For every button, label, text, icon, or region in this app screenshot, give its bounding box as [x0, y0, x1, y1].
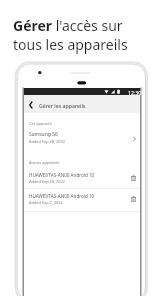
- staticText: HUAWEI/TAS-AN00 Android 10: [29, 193, 95, 199]
- other: Device details: [128, 128, 140, 146]
- button[interactable]: Samsung S6: [24, 128, 140, 146]
- staticText: 12:30: [128, 89, 142, 96]
- staticText: Added Sep 20, 2022: [29, 179, 66, 184]
- staticText: Added Sep 28, 2022: [29, 139, 66, 144]
- staticText: Cet appareil: [29, 121, 52, 126]
- staticText: HUAWEI/TAS-AN00 Android 10: [29, 172, 95, 178]
- button[interactable]: Delete device: [127, 167, 140, 188]
- staticText: Gérer l'accès sur tous les appareils: [13, 16, 139, 54]
- staticText: Added Sep 2, 2022: [29, 200, 63, 205]
- staticText: Samsung S6: [29, 131, 58, 138]
- button[interactable]: HUAWEI/TAS-AN00 Android 10: [24, 167, 140, 188]
- button[interactable]: HUAWEI/TAS-AN00 Android 10: [24, 188, 140, 209]
- staticText: Gérer les appareils: [39, 102, 86, 109]
- button[interactable]: Back: [24, 95, 36, 113]
- staticText: Autres appareils: [29, 160, 60, 165]
- button[interactable]: Back: [24, 95, 140, 113]
- button[interactable]: Delete device: [127, 188, 140, 209]
